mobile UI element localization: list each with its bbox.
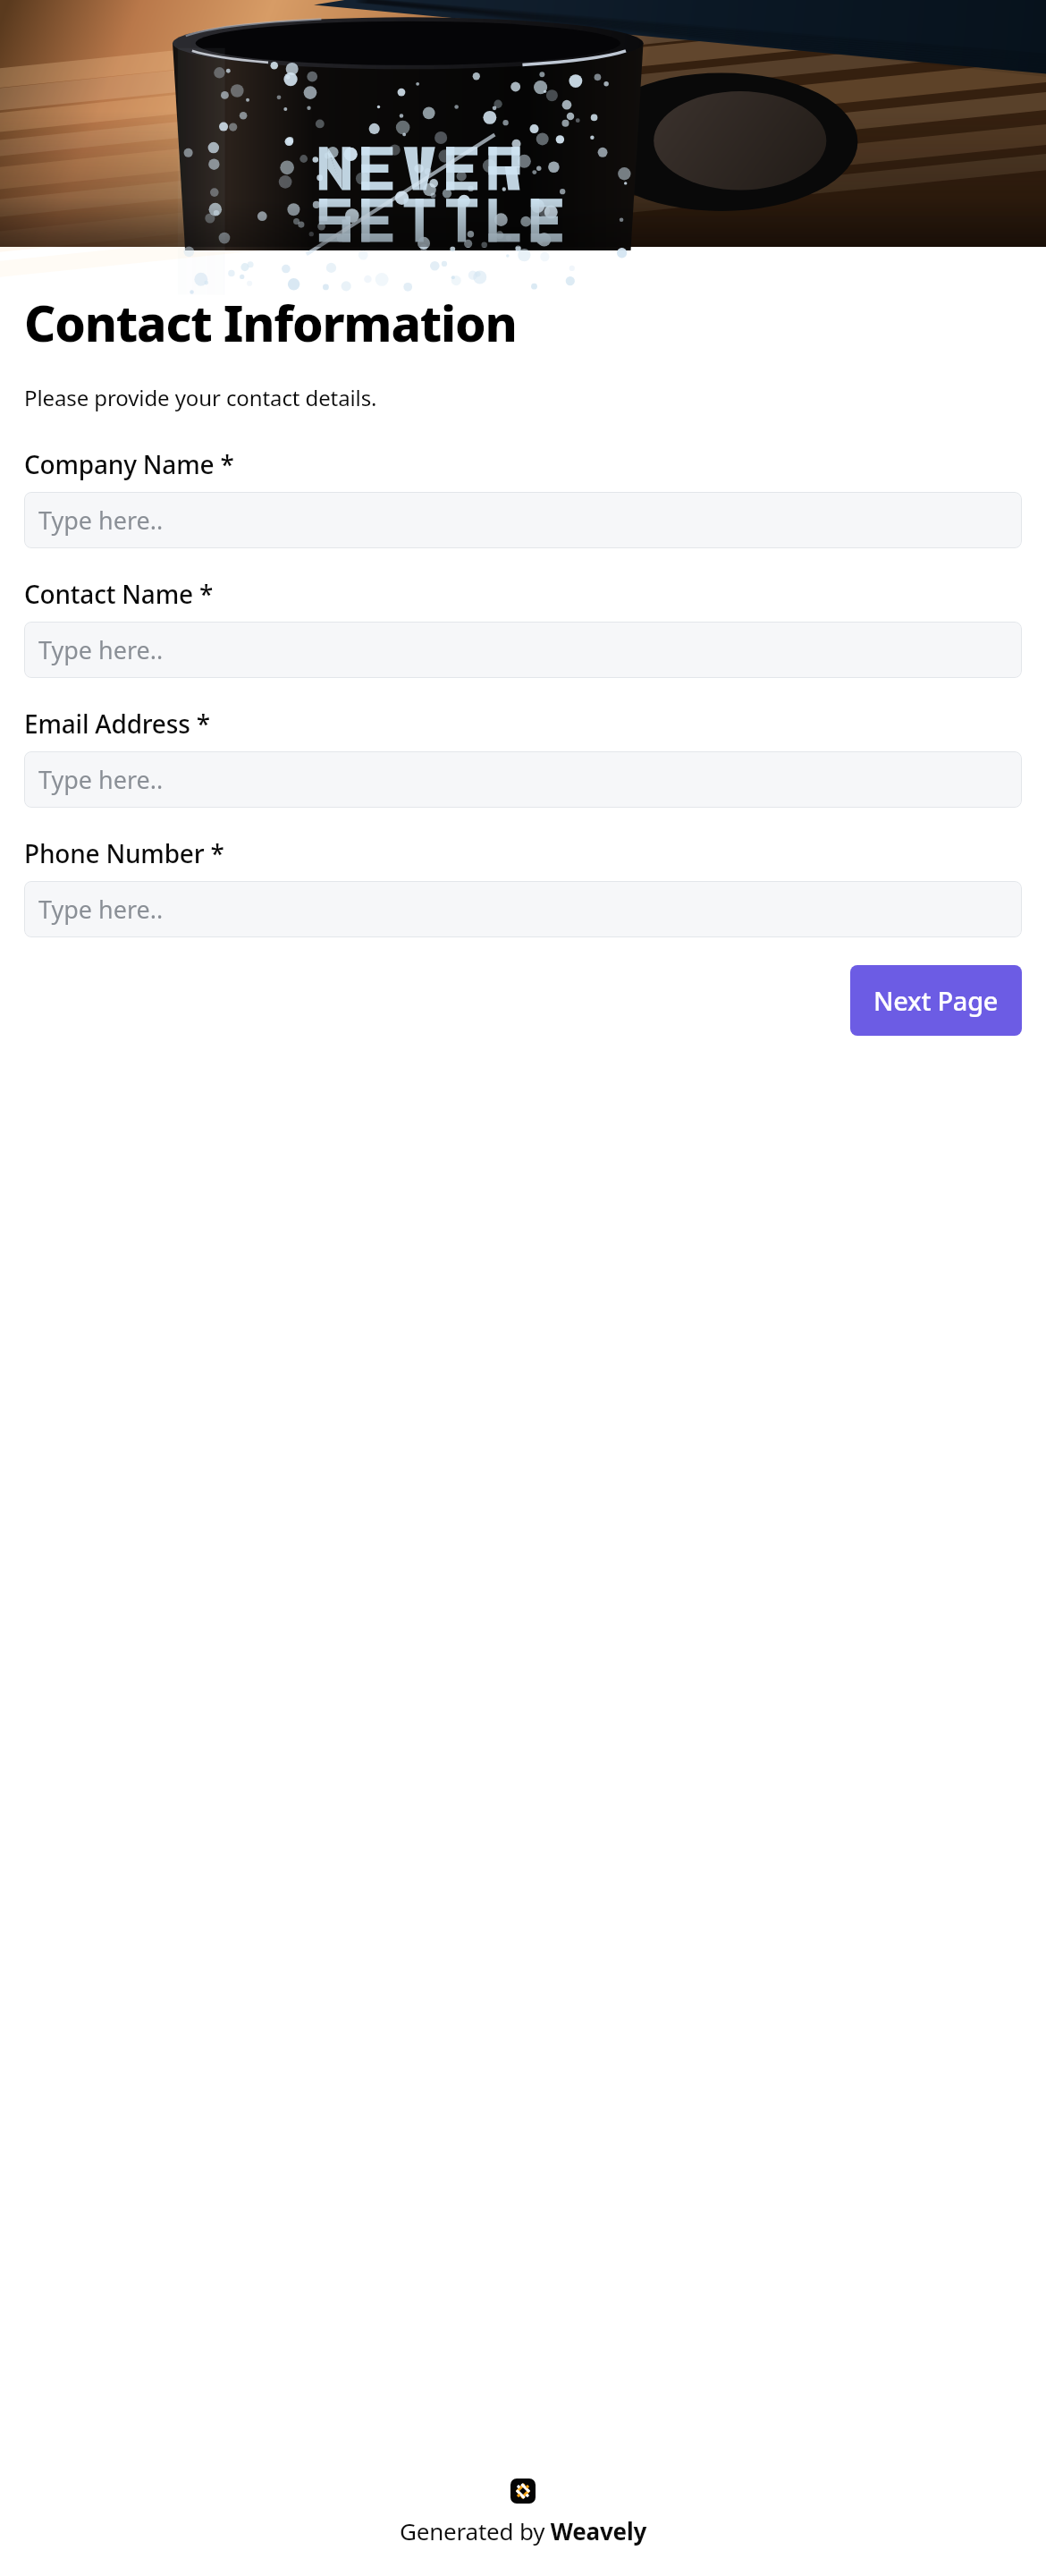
button[interactable]: Type here.. [24,751,1022,808]
staticText: Contact Name * [24,577,214,611]
staticText: Type here.. [38,504,164,537]
staticText: Email Address * [24,707,210,741]
button[interactable]: Type here.. [24,881,1022,937]
staticText: Next Page [873,983,999,1018]
staticText: Generated by Weavely [400,2515,647,2546]
button[interactable]: Type here.. [24,622,1022,678]
staticText: Contact Information [24,289,517,356]
button[interactable]: Weavely logo [510,2479,536,2504]
staticText: Type here.. [38,633,164,666]
staticText: Type here.. [38,893,164,926]
staticText: Please provide your contact details. [24,383,377,412]
button[interactable]: Type here.. [24,492,1022,548]
staticText: Company Name * [24,447,234,481]
button[interactable]: Next Page [850,965,1022,1036]
staticText: Phone Number * [24,836,224,870]
staticText: Type here.. [38,763,164,796]
